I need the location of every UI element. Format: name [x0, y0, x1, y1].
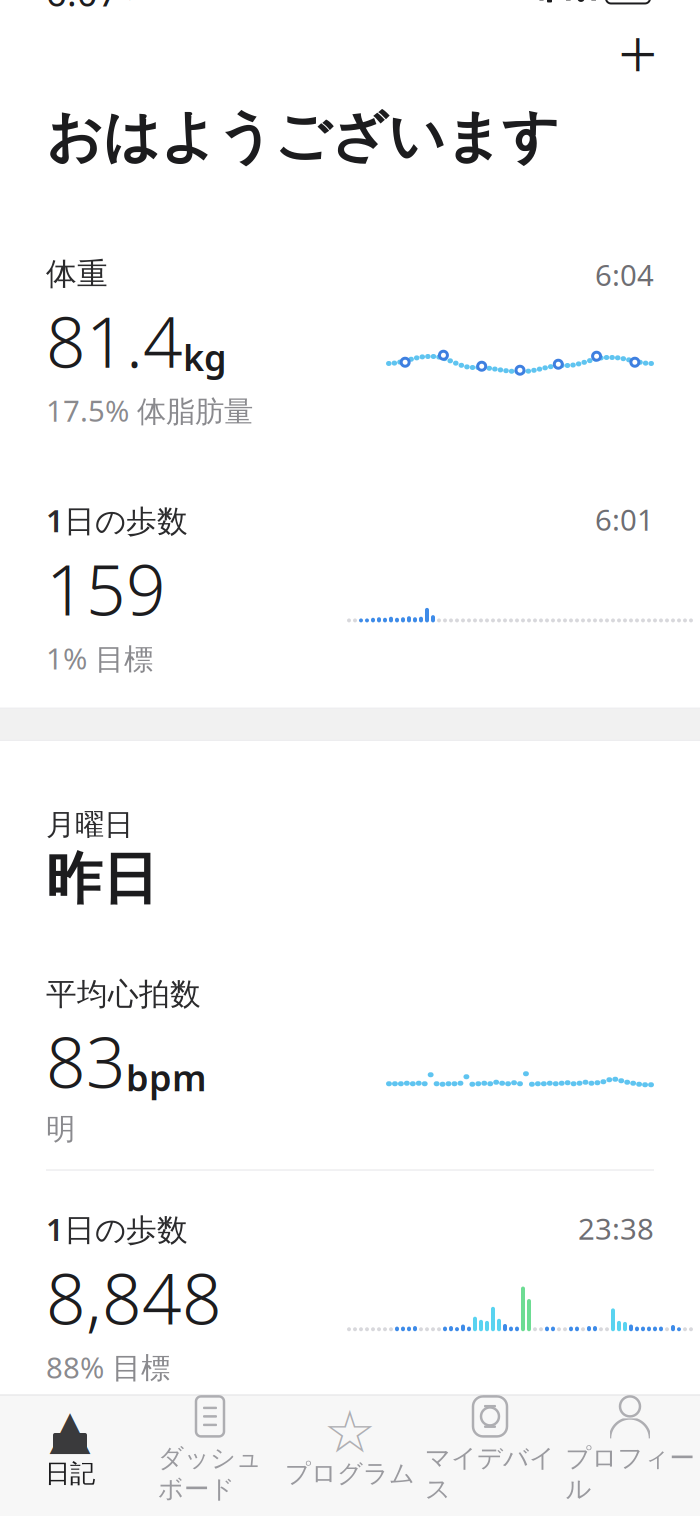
staticText: kg — [183, 333, 227, 381]
button[interactable]: ダッシュボード — [140, 1384, 280, 1513]
button[interactable]: プロフィール — [560, 1384, 700, 1513]
staticText: 平均心拍数 — [46, 975, 201, 1013]
staticText: bpm — [126, 1053, 207, 1101]
staticText: 83 — [46, 1015, 126, 1107]
staticText: ☆ — [323, 1399, 376, 1465]
button[interactable]: マイデバイス — [420, 1384, 560, 1513]
button[interactable]: ▲ — [0, 1400, 140, 1497]
staticText: 1日の歩数 — [46, 500, 188, 541]
button[interactable]: 平均心拍数 — [0, 975, 700, 1147]
staticText: マイデバイス — [425, 1442, 555, 1505]
staticText: 17.5% 体脂肪量 — [46, 391, 253, 430]
staticText: 6:04 — [595, 255, 654, 294]
staticText: 明 — [46, 1111, 75, 1147]
staticText: 月曜日 — [46, 807, 133, 843]
staticText: プログラム — [285, 1458, 415, 1489]
staticText: おはようございます — [46, 102, 559, 171]
staticText: 159 — [46, 543, 166, 635]
staticText: 体重 — [46, 255, 108, 293]
button[interactable]: Add — [606, 20, 670, 84]
button[interactable]: ☆ — [280, 1400, 420, 1497]
staticText: 81.4 — [46, 295, 183, 387]
staticText: 昨日 — [46, 845, 158, 913]
button[interactable]: 体重 — [0, 255, 700, 430]
staticText: ▲ — [49, 1399, 90, 1459]
staticText: 8,848 — [46, 1251, 222, 1344]
staticText: + — [618, 6, 658, 98]
button[interactable]: 1日の歩数 — [0, 500, 700, 678]
staticText: 6:07 — [46, 0, 119, 16]
staticText: 6:01 — [595, 500, 654, 539]
button[interactable]: 1日の歩数 — [0, 1209, 700, 1387]
staticText: 88% 目標 — [46, 1348, 170, 1387]
staticText: 1日の歩数 — [46, 1209, 188, 1249]
staticText: 1% 目標 — [46, 639, 153, 678]
staticText: ダッシュボード — [158, 1442, 262, 1505]
staticText: 日記 — [45, 1458, 95, 1489]
staticText: プロフィール — [565, 1442, 694, 1505]
staticText: 23:38 — [578, 1209, 654, 1248]
